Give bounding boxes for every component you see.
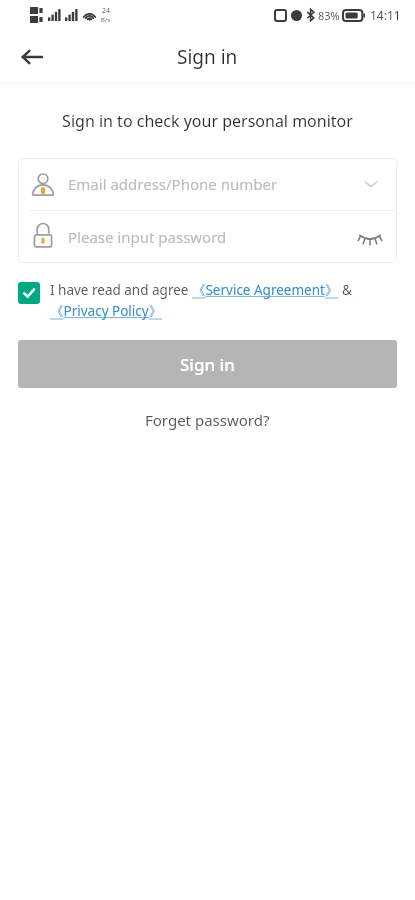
staticText: B/s [101, 16, 111, 24]
staticText: Please input password [68, 227, 355, 247]
button[interactable]: Agree to terms [18, 282, 40, 304]
button[interactable]: Please input password [18, 211, 397, 263]
button[interactable]: Back [10, 35, 54, 79]
staticText: Sign in [177, 44, 238, 70]
staticText: 24 [102, 6, 111, 16]
staticText: Email address/Phone number [68, 174, 357, 194]
staticText: 14:11 [370, 7, 401, 23]
button[interactable]: Show account list [357, 170, 385, 198]
button[interactable]: Sign in [18, 340, 397, 388]
button[interactable]: Show password [355, 222, 385, 252]
staticText: Sign in [180, 353, 235, 376]
button[interactable]: I have read and agree 《Service Agreement… [50, 281, 397, 320]
button[interactable]: Forget password? [131, 404, 284, 436]
staticText: 83% [318, 8, 340, 23]
button[interactable]: Email address/Phone number [18, 158, 397, 210]
staticText: Sign in to check your personal monitor [0, 110, 415, 132]
